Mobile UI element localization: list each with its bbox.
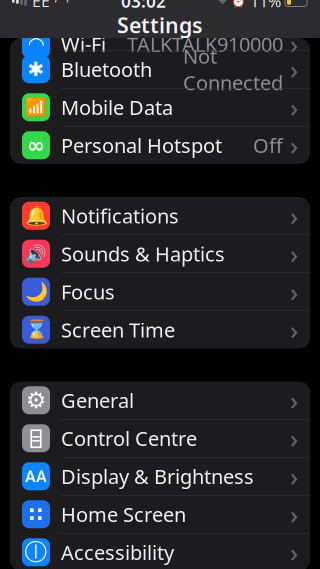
staticText: Control Centre — [61, 425, 197, 452]
staticText: › — [290, 459, 298, 493]
staticText: 03:02 — [121, 0, 166, 12]
staticText: › — [290, 27, 298, 61]
button[interactable]: ⌛ — [10, 311, 310, 348]
button[interactable]: 📶 — [10, 88, 310, 126]
staticText: › — [290, 421, 298, 455]
staticText: ∞ — [27, 133, 45, 157]
staticText: › — [290, 52, 298, 86]
staticText: ⏰ — [231, 0, 246, 8]
button[interactable]: ⓛ — [10, 533, 310, 569]
staticText: Sounds & Haptics — [61, 240, 225, 267]
staticText: ⌛ — [24, 319, 47, 340]
staticText: Focus — [61, 278, 115, 305]
staticText: Mobile Data — [61, 94, 173, 121]
staticText: › — [290, 535, 298, 569]
staticText: ⓛ — [24, 538, 47, 566]
button[interactable]: 🔊 — [10, 235, 310, 272]
button[interactable]: 🌙 — [10, 273, 310, 310]
staticText: Display & Brightness — [61, 463, 254, 490]
button[interactable]: AA — [10, 457, 310, 495]
staticText: Off — [253, 132, 283, 159]
staticText: ✱ — [27, 58, 44, 81]
button[interactable]: ∷ — [10, 495, 310, 533]
staticText: Accessibility — [61, 539, 174, 566]
button[interactable]: ✱ — [10, 50, 310, 88]
staticText: Home Screen — [61, 501, 186, 528]
button[interactable]: ∞ — [10, 126, 310, 164]
staticText: › — [290, 275, 298, 308]
button[interactable]: ⌸ — [10, 419, 310, 457]
staticText: EE — [32, 0, 50, 12]
staticText: ◠ — [55, 0, 68, 11]
staticText: Settings — [117, 11, 203, 39]
staticText: Notifications — [61, 202, 179, 229]
staticText: Wi-Fi — [61, 31, 106, 57]
staticText: › — [290, 128, 298, 162]
staticText: 📶 — [25, 97, 47, 117]
staticText: › — [290, 383, 298, 417]
staticText: ⌖ — [219, 0, 227, 7]
staticText: General — [61, 387, 134, 414]
staticText: TALKTALK910000 — [127, 31, 283, 57]
staticText: › — [290, 313, 298, 346]
staticText: 🔔 — [24, 205, 47, 226]
staticText: › — [290, 237, 298, 270]
staticText: ⚙ — [26, 387, 46, 413]
staticText: 🔊 — [25, 244, 47, 264]
staticText: ◠ — [28, 33, 43, 55]
button[interactable]: ⚙ — [10, 381, 310, 419]
staticText: Personal Hotspot — [61, 132, 222, 159]
staticText: ⌸ — [30, 425, 42, 452]
staticText: Not Connected — [183, 43, 283, 96]
button[interactable]: 🔔 — [10, 197, 310, 234]
staticText: ∷ — [29, 503, 43, 526]
staticText: Bluetooth — [61, 56, 152, 83]
staticText: › — [290, 199, 298, 232]
staticText: Screen Time — [61, 316, 175, 343]
button[interactable]: ◠ — [10, 25, 310, 63]
staticText: › — [290, 90, 298, 124]
staticText: 11% — [250, 0, 281, 12]
staticText: › — [290, 497, 298, 531]
staticText: 🌙 — [24, 281, 47, 302]
staticText: AA — [25, 466, 47, 487]
